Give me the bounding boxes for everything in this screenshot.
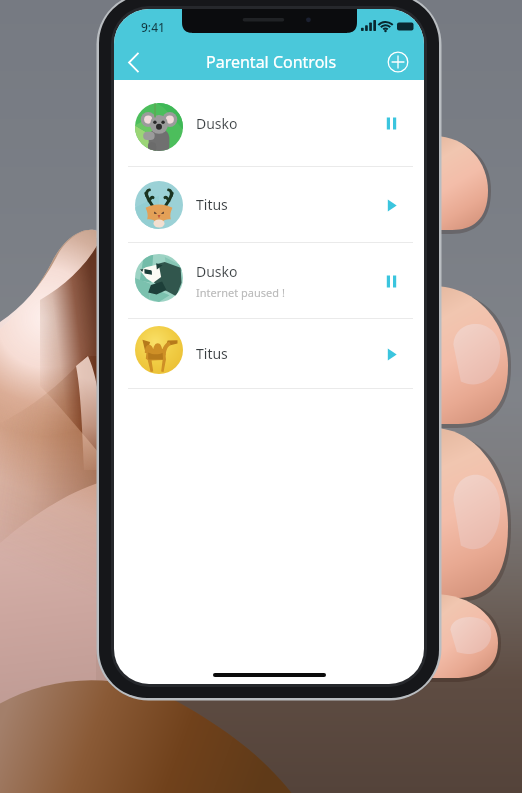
button[interactable]: Back [117, 46, 149, 78]
button[interactable]: Resume internet [378, 110, 404, 136]
staticText: Internet paused ! [196, 285, 285, 300]
button[interactable]: Dusko [114, 80, 424, 166]
staticText: 9:41 [141, 19, 165, 35]
button[interactable]: Resume internet [378, 268, 404, 294]
button[interactable]: Pause internet [378, 192, 404, 218]
button[interactable]: Add device [383, 47, 413, 77]
staticText: Dusko [196, 114, 238, 133]
staticText: Titus [196, 344, 228, 363]
button[interactable]: Titus [114, 319, 424, 388]
button[interactable]: Dusko [114, 243, 424, 318]
staticText: Parental Controls [206, 51, 337, 73]
staticText: Dusko [196, 262, 238, 281]
staticText: Titus [196, 195, 228, 214]
button[interactable]: Pause internet [378, 341, 404, 367]
button[interactable]: Titus [114, 167, 424, 242]
